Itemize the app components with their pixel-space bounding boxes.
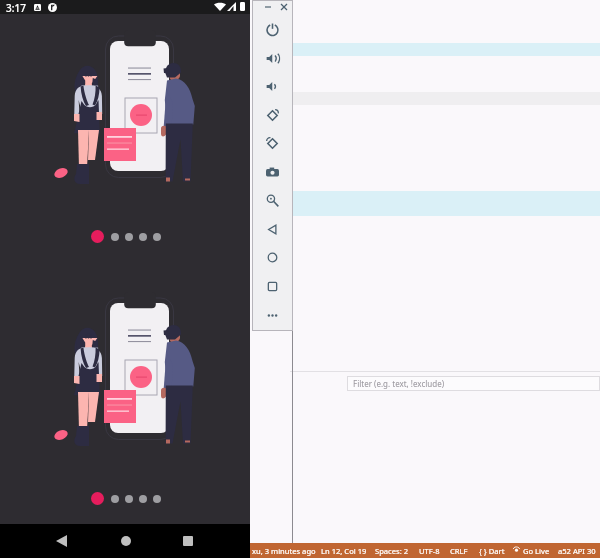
- button[interactable]: [91, 230, 104, 243]
- button[interactable]: Rotate right: [258, 129, 286, 157]
- button[interactable]: Home: [258, 243, 286, 271]
- button[interactable]: [125, 233, 133, 241]
- button[interactable]: Ln 12, Col 19: [321, 543, 367, 558]
- staticText: UTF-8: [419, 546, 440, 556]
- button[interactable]: xu, 3 minutes ago: [252, 543, 316, 558]
- button[interactable]: [139, 233, 147, 241]
- button[interactable]: [125, 495, 133, 503]
- button[interactable]: [153, 495, 161, 503]
- staticText: a52 API 30: [558, 546, 596, 556]
- button[interactable]: [111, 233, 119, 241]
- button[interactable]: Back: [258, 215, 286, 243]
- button[interactable]: More: [258, 301, 286, 329]
- button[interactable]: [153, 233, 161, 241]
- staticText: Filter (e.g. text, !exclude): [353, 378, 445, 389]
- button[interactable]: Zoom: [258, 186, 286, 214]
- button[interactable]: a52 API 30: [558, 543, 596, 558]
- staticText: CRLF: [450, 546, 468, 556]
- button[interactable]: Spaces: 2: [375, 543, 409, 558]
- button[interactable]: Rotate left: [258, 101, 286, 129]
- button[interactable]: [111, 495, 119, 503]
- button[interactable]: Recents: [258, 272, 286, 300]
- staticText: Spaces: 2: [375, 546, 409, 556]
- button[interactable]: Power: [258, 15, 286, 43]
- button[interactable]: Go Live: [523, 543, 550, 558]
- button[interactable]: Back: [49, 529, 73, 553]
- button[interactable]: Volume down: [258, 72, 286, 100]
- button[interactable]: UTF-8: [419, 543, 440, 558]
- button[interactable]: Minimize: [263, 2, 273, 12]
- button[interactable]: Recents: [176, 529, 200, 553]
- button[interactable]: CRLF: [450, 543, 468, 558]
- staticText: xu, 3 minutes ago: [252, 546, 316, 556]
- button[interactable]: Screenshot: [258, 158, 286, 186]
- staticText: { } Dart: [479, 546, 505, 556]
- button[interactable]: [139, 495, 147, 503]
- button[interactable]: [91, 492, 104, 505]
- button[interactable]: { } Dart: [479, 543, 505, 558]
- staticText: Ln 12, Col 19: [321, 546, 367, 556]
- button[interactable]: Filter (e.g. text, !exclude): [347, 376, 600, 391]
- button[interactable]: Home: [114, 529, 138, 553]
- staticText: 3:17: [6, 1, 26, 15]
- staticText: Go Live: [523, 546, 550, 556]
- button[interactable]: Close: [279, 2, 289, 12]
- button[interactable]: Volume up: [258, 44, 286, 72]
